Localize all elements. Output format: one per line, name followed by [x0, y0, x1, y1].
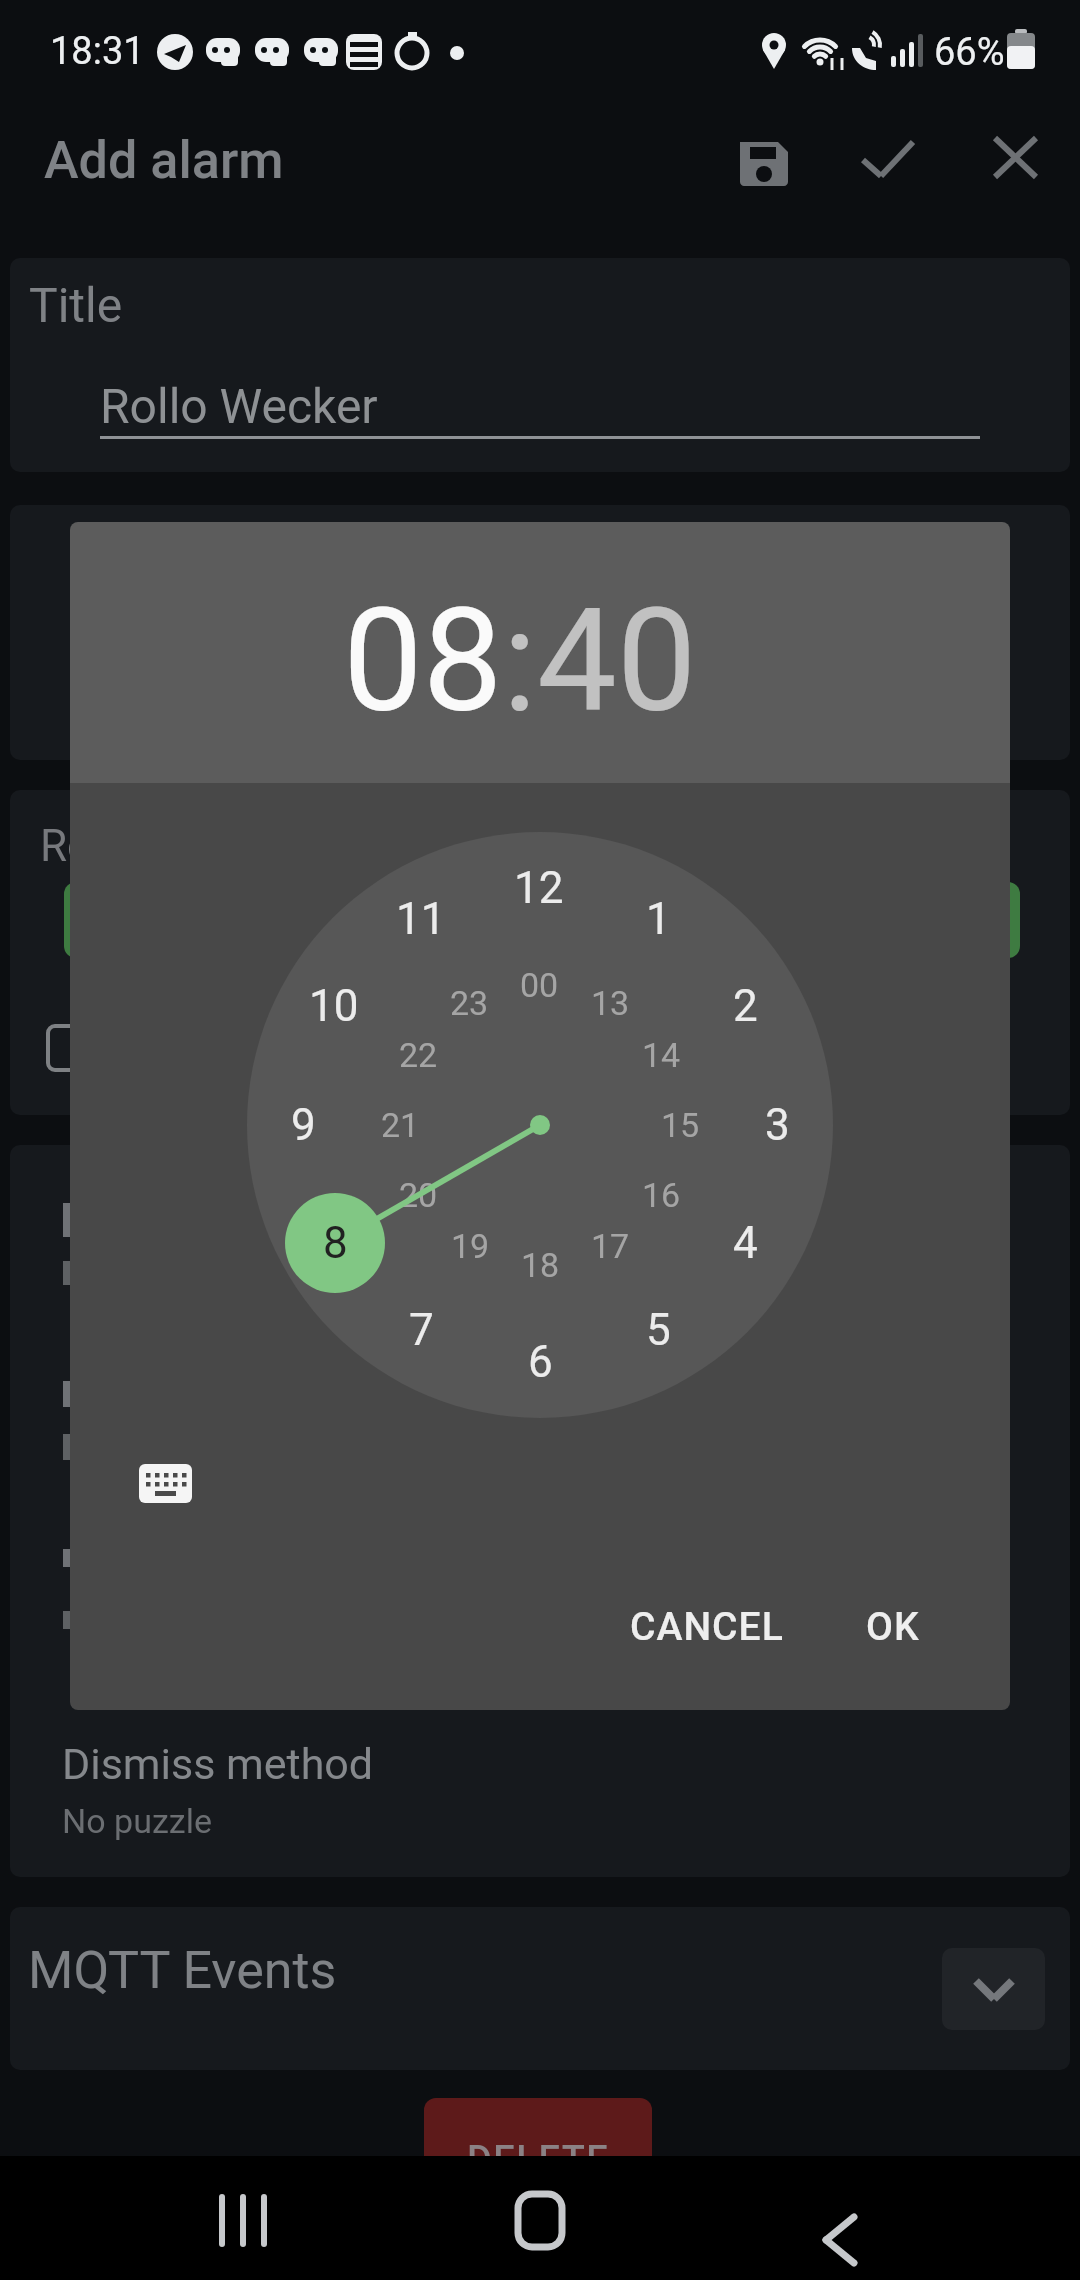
button[interactable]: 4: [685, 1208, 805, 1278]
button[interactable]: [495, 2176, 585, 2260]
button[interactable]: 23: [409, 973, 529, 1033]
button[interactable]: 21: [340, 1095, 460, 1155]
staticText: 16: [642, 1175, 681, 1215]
staticText: 4: [733, 1217, 758, 1269]
staticText: 9: [291, 1099, 316, 1151]
button[interactable]: [942, 1948, 1045, 2030]
staticText: 17: [591, 1226, 630, 1266]
button[interactable]: 17: [550, 1216, 670, 1276]
staticText: OK: [866, 1604, 920, 1650]
staticText: 10: [309, 980, 359, 1032]
staticText: 13: [591, 983, 630, 1023]
button[interactable]: 12: [479, 853, 599, 923]
button[interactable]: 15: [620, 1095, 740, 1155]
staticText: 1: [646, 893, 671, 945]
staticText: 2: [733, 980, 758, 1032]
button[interactable]: [100, 366, 980, 439]
staticText: 7: [409, 1304, 434, 1356]
staticText: 00: [520, 965, 559, 1005]
button[interactable]: 3: [717, 1090, 837, 1160]
staticText: DELETE: [467, 2138, 610, 2183]
staticText: 22: [399, 1035, 438, 1075]
button[interactable]: 18: [480, 1235, 600, 1295]
button[interactable]: 16: [601, 1165, 721, 1225]
staticText: Repeat: [40, 820, 177, 872]
staticText: Rollo Wecker: [100, 378, 378, 434]
staticText: CANCEL: [630, 1604, 784, 1650]
staticText: 21: [381, 1105, 420, 1145]
staticText: 19: [451, 1226, 490, 1266]
staticText: No puzzle: [62, 1801, 212, 1841]
staticText: 20: [399, 1175, 438, 1215]
staticText: 66%: [934, 30, 1005, 75]
button[interactable]: 00: [479, 955, 599, 1015]
button[interactable]: 22: [358, 1025, 478, 1085]
button[interactable]: 2: [685, 971, 805, 1041]
staticText: Add alarm: [44, 130, 284, 191]
button[interactable]: [64, 882, 1020, 958]
staticText: Title: [29, 277, 123, 333]
button[interactable]: [726, 120, 801, 195]
button[interactable]: [195, 2176, 285, 2260]
staticText: 18:31: [50, 29, 145, 74]
staticText: 18: [521, 1245, 560, 1285]
button[interactable]: [127, 1452, 203, 1528]
button[interactable]: [978, 120, 1053, 195]
button[interactable]: 6: [480, 1327, 600, 1397]
staticText: Dismiss method: [62, 1739, 374, 1789]
button[interactable]: DELETE: [424, 2098, 652, 2198]
staticText: 6: [528, 1336, 553, 1388]
staticText: 8: [323, 1217, 348, 1269]
button[interactable]: [851, 120, 926, 195]
staticText: 08:40: [343, 578, 697, 744]
staticText: 23: [450, 983, 489, 1023]
button[interactable]: 11: [361, 884, 481, 954]
staticText: 12: [514, 862, 564, 914]
button[interactable]: CANCEL: [607, 1592, 807, 1662]
button[interactable]: 7: [361, 1295, 481, 1365]
staticText: 15: [661, 1105, 700, 1145]
button[interactable]: 5: [598, 1295, 718, 1365]
button[interactable]: 1: [598, 884, 718, 954]
staticText: 14: [642, 1035, 681, 1075]
staticText: 11: [396, 893, 446, 945]
button[interactable]: OK: [833, 1592, 953, 1662]
button[interactable]: 20: [358, 1165, 478, 1225]
button[interactable]: 9: [243, 1090, 363, 1160]
button[interactable]: 13: [550, 973, 670, 1033]
staticText: 3: [765, 1099, 790, 1151]
button[interactable]: 14: [601, 1025, 721, 1085]
staticText: 5: [646, 1304, 671, 1356]
button[interactable]: 10: [274, 971, 394, 1041]
button[interactable]: [795, 2176, 885, 2260]
button[interactable]: 8: [285, 1193, 385, 1293]
button[interactable]: 19: [410, 1216, 530, 1276]
button[interactable]: [46, 1024, 94, 1072]
staticText: MQTT Events: [28, 1940, 337, 2001]
